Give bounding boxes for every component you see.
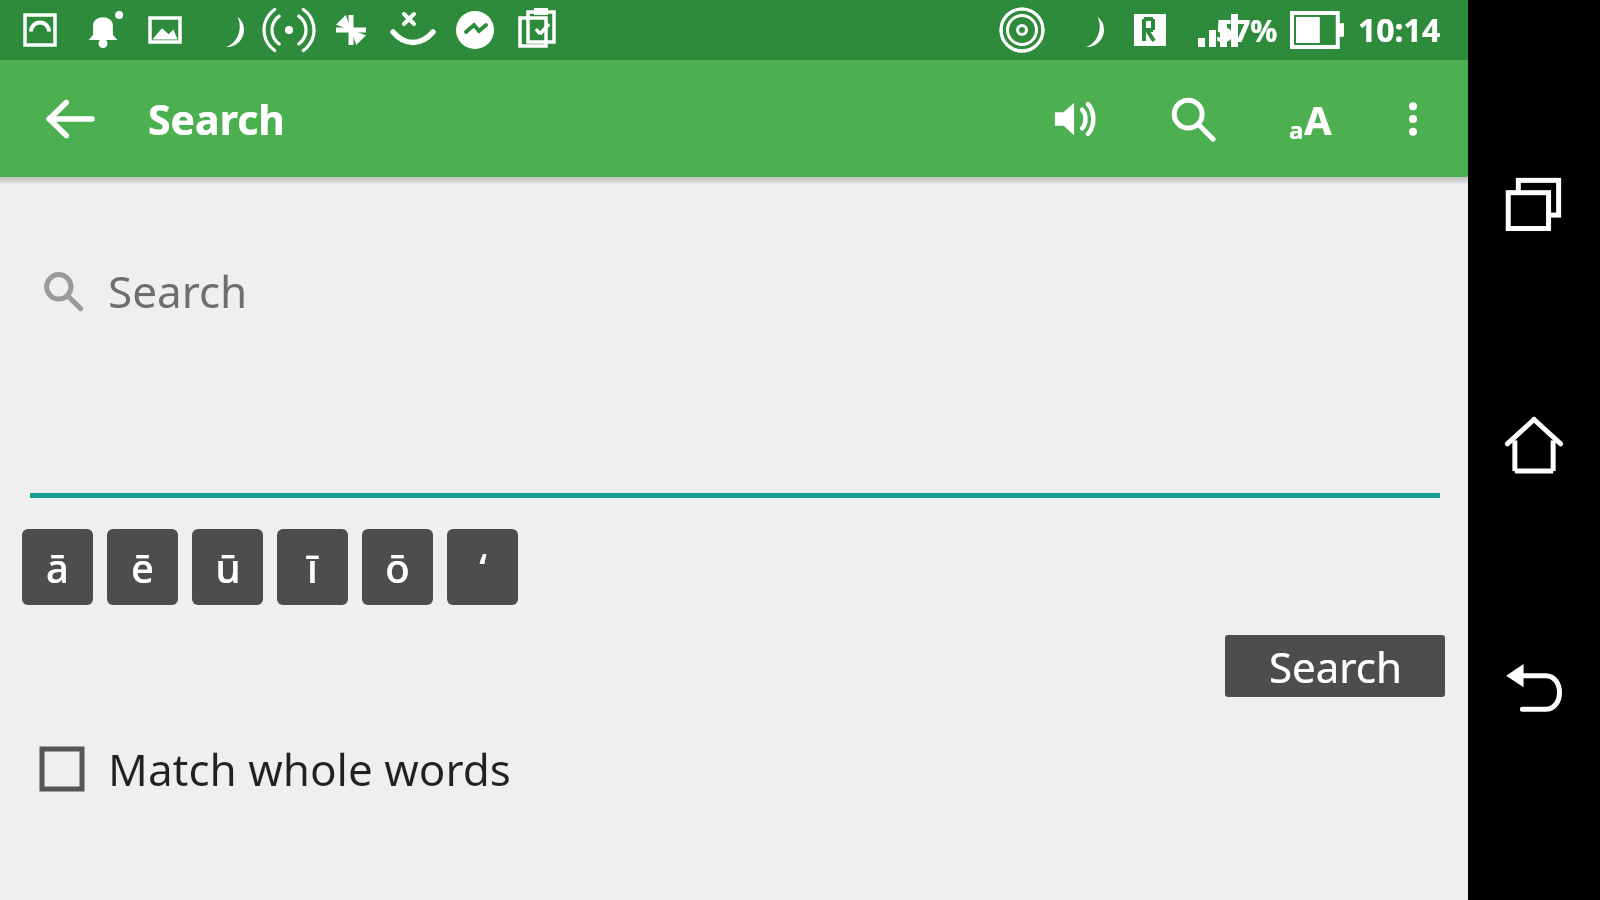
staticText: ū — [215, 540, 241, 594]
staticText: ā — [46, 540, 69, 594]
button[interactable]: ō — [362, 529, 433, 605]
button[interactable]: Text size — [1277, 86, 1343, 152]
staticText: a — [1289, 113, 1304, 146]
staticText: 57% — [1216, 10, 1278, 51]
button[interactable]: Search — [1160, 86, 1226, 152]
button[interactable]: Search — [30, 249, 1440, 341]
button[interactable]: Match whole words — [28, 729, 511, 809]
button[interactable]: Recent apps — [1479, 150, 1589, 260]
button[interactable]: Read aloud — [1043, 86, 1109, 152]
staticText: Search — [108, 261, 248, 321]
button[interactable]: ī — [277, 529, 348, 605]
button[interactable]: ū — [192, 529, 263, 605]
staticText: Match whole words — [108, 739, 511, 799]
button[interactable]: Back — [30, 79, 110, 159]
button[interactable]: More options — [1380, 86, 1446, 152]
button[interactable]: Text size — [1277, 86, 1343, 152]
staticText: ō — [385, 540, 410, 594]
button[interactable]: ā — [22, 529, 93, 605]
button[interactable]: ē — [107, 529, 178, 605]
staticText: 10:14 — [1358, 8, 1441, 52]
staticText: A — [1304, 92, 1332, 146]
button[interactable]: Back — [1479, 630, 1589, 740]
staticText: Search — [1269, 638, 1402, 695]
staticText: ʻ — [479, 540, 487, 594]
button[interactable]: ʻ — [447, 529, 518, 605]
staticText: Search — [148, 91, 285, 147]
staticText: ī — [307, 540, 318, 594]
button[interactable]: Home — [1479, 390, 1589, 500]
button[interactable]: Search — [1225, 635, 1445, 697]
staticText: ē — [131, 540, 154, 594]
